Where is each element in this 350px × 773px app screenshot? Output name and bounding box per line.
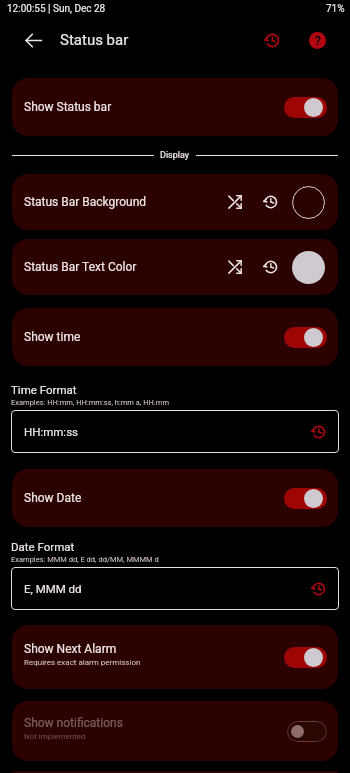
- staticText: Show Status bar: [24, 100, 112, 114]
- staticText: Not implemented: [24, 732, 86, 741]
- button[interactable]: Toggle: [284, 647, 327, 668]
- button[interactable]: Reset to defaults: [254, 23, 288, 57]
- staticText: Show notifications: [24, 716, 123, 730]
- button[interactable]: Show Next Alarm: [12, 625, 338, 689]
- button[interactable]: Show Date: [12, 469, 338, 527]
- button[interactable]: Show time: [12, 308, 338, 366]
- button[interactable]: Reset format: [307, 578, 329, 600]
- staticText: E, MMM dd: [24, 582, 307, 595]
- button[interactable]: HH:mm:ss: [11, 410, 339, 453]
- staticText: Status Bar Text Color: [24, 260, 224, 274]
- staticText: Show time: [24, 330, 81, 344]
- staticText: Date Format: [11, 540, 75, 553]
- staticText: Show Next Alarm: [24, 642, 117, 656]
- staticText: Show Date: [24, 491, 82, 505]
- button[interactable]: Reset format: [307, 421, 329, 443]
- button[interactable]: Back: [18, 25, 48, 55]
- staticText: Time Format: [11, 383, 77, 396]
- button[interactable]: Help: [300, 23, 334, 57]
- staticText: Examples: HH:mm, HH:mm:ss, h:mm a, HH.mm: [11, 398, 169, 407]
- button[interactable]: Pick color: [292, 251, 325, 284]
- staticText: Status Bar Background: [24, 195, 224, 209]
- button[interactable]: Toggle: [284, 488, 327, 509]
- button[interactable]: Randomize color: [224, 191, 246, 213]
- staticText: Status bar: [60, 31, 129, 49]
- button[interactable]: Status Bar Background: [12, 174, 338, 230]
- staticText: Examples: MMM dd, E dd, dd/MM, MMMM d: [11, 555, 159, 564]
- button[interactable]: Toggle: [284, 97, 327, 118]
- button[interactable]: Show notifications: [12, 701, 338, 761]
- button[interactable]: Show Status bar: [12, 78, 338, 136]
- button[interactable]: Reset color: [259, 256, 281, 278]
- staticText: HH:mm:ss: [24, 425, 307, 438]
- button[interactable]: E, MMM dd: [11, 567, 339, 610]
- button[interactable]: Pick color: [292, 186, 325, 219]
- button[interactable]: Toggle: [287, 721, 327, 742]
- staticText: 71%: [326, 3, 345, 15]
- button[interactable]: Toggle: [284, 327, 327, 348]
- button[interactable]: Reset color: [259, 191, 281, 213]
- staticText: 12:00:55 | Sun, Dec 28: [7, 3, 106, 15]
- button[interactable]: Randomize color: [224, 256, 246, 278]
- staticText: ?: [315, 34, 321, 48]
- staticText: Requires exact alarm permission: [24, 658, 141, 667]
- button[interactable]: Status Bar Text Color: [12, 239, 338, 295]
- staticText: Display: [160, 150, 190, 161]
